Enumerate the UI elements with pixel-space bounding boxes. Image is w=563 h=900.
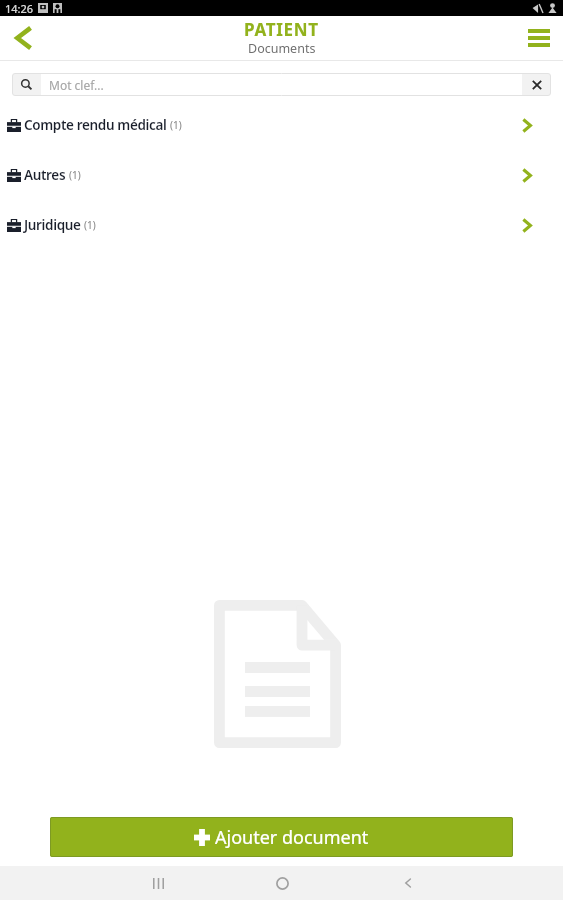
staticText: 14:26	[5, 1, 34, 16]
staticText: Ajouter document	[215, 825, 369, 850]
button[interactable]: Mot clef...	[41, 73, 522, 96]
button[interactable]: Back	[0, 16, 44, 60]
button[interactable]: Back	[378, 866, 438, 900]
staticText: Mot clef...	[49, 77, 104, 93]
staticText: (1)	[69, 168, 81, 182]
button[interactable]: Menu	[521, 16, 557, 60]
staticText: Documents	[248, 40, 316, 57]
button[interactable]: Autres	[0, 150, 563, 200]
button[interactable]: Recent apps	[128, 866, 188, 900]
staticText: Autres	[24, 166, 66, 184]
staticText: (1)	[170, 118, 182, 132]
staticText: Compte rendu médical	[24, 116, 167, 134]
button[interactable]: Home	[252, 866, 312, 900]
button[interactable]: Clear	[522, 73, 551, 96]
staticText: PATIENT	[244, 18, 319, 41]
button[interactable]: Compte rendu médical	[0, 100, 563, 150]
button[interactable]: Juridique	[0, 200, 563, 250]
button[interactable]: Ajouter document	[50, 817, 513, 857]
button[interactable]: Search	[12, 73, 41, 96]
staticText: Juridique	[24, 216, 81, 234]
staticText: (1)	[84, 218, 96, 232]
